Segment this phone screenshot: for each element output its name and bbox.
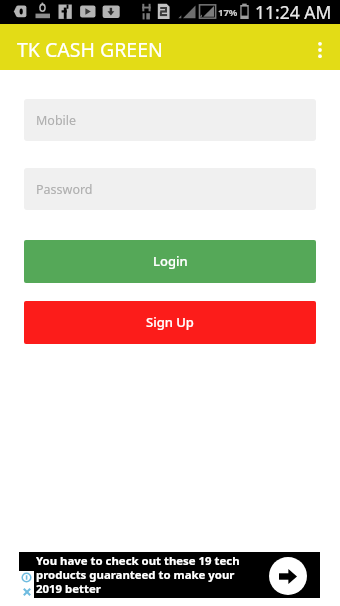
staticText: 11:24 AM bbox=[255, 0, 332, 24]
button[interactable]: Sign Up bbox=[24, 301, 316, 344]
button[interactable]: Ad information bbox=[20, 571, 33, 584]
staticText: Password bbox=[36, 181, 93, 198]
staticText: You have to check out these 19 tech prod… bbox=[36, 553, 240, 596]
staticText: Sign Up bbox=[146, 313, 194, 331]
button[interactable]: Password bbox=[24, 168, 316, 210]
staticText: Mobile bbox=[36, 112, 77, 129]
button[interactable]: Mobile bbox=[24, 99, 316, 141]
button[interactable]: Login bbox=[24, 240, 316, 283]
staticText: TK CASH GREEN bbox=[17, 36, 163, 63]
button[interactable]: You have to check out these 19 tech prod… bbox=[19, 552, 320, 598]
button[interactable]: Open ad bbox=[269, 557, 307, 595]
button[interactable]: More options bbox=[298, 26, 340, 68]
staticText: Login bbox=[153, 252, 188, 270]
button[interactable]: Close ad bbox=[20, 585, 33, 598]
staticText: 17% bbox=[218, 6, 238, 19]
